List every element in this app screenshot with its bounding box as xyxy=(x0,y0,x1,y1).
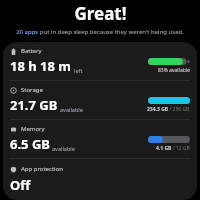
staticText: 21.7 GB xyxy=(10,96,58,114)
staticText: App protection xyxy=(21,165,63,173)
staticText: 6.5 GB xyxy=(10,135,50,153)
staticText: Battery xyxy=(21,47,42,55)
other: Storage xyxy=(10,87,17,94)
staticText: 20 apps put in deep sleep because they w… xyxy=(16,28,184,36)
staticText: available xyxy=(60,106,83,113)
other: App protection xyxy=(10,166,17,173)
button[interactable]: Memory xyxy=(3,120,197,158)
staticText: 234.3 GB / 256 GB xyxy=(147,106,190,113)
staticText: 4.1 GB / 12 GB xyxy=(156,145,190,152)
staticText: 18 h 18 m xyxy=(10,57,72,75)
staticText: 83% available xyxy=(158,67,190,74)
other: Battery xyxy=(10,48,17,55)
button[interactable]: Battery xyxy=(3,42,197,80)
staticText: Memory xyxy=(21,125,45,133)
staticText: Off xyxy=(10,176,31,194)
staticText: Storage xyxy=(21,86,43,94)
other: Memory xyxy=(10,126,17,133)
button[interactable]: Storage xyxy=(3,81,197,119)
staticText: Great! xyxy=(74,2,127,25)
staticText: available xyxy=(52,145,75,152)
button[interactable]: App protection xyxy=(3,159,197,200)
staticText: left xyxy=(74,67,83,74)
